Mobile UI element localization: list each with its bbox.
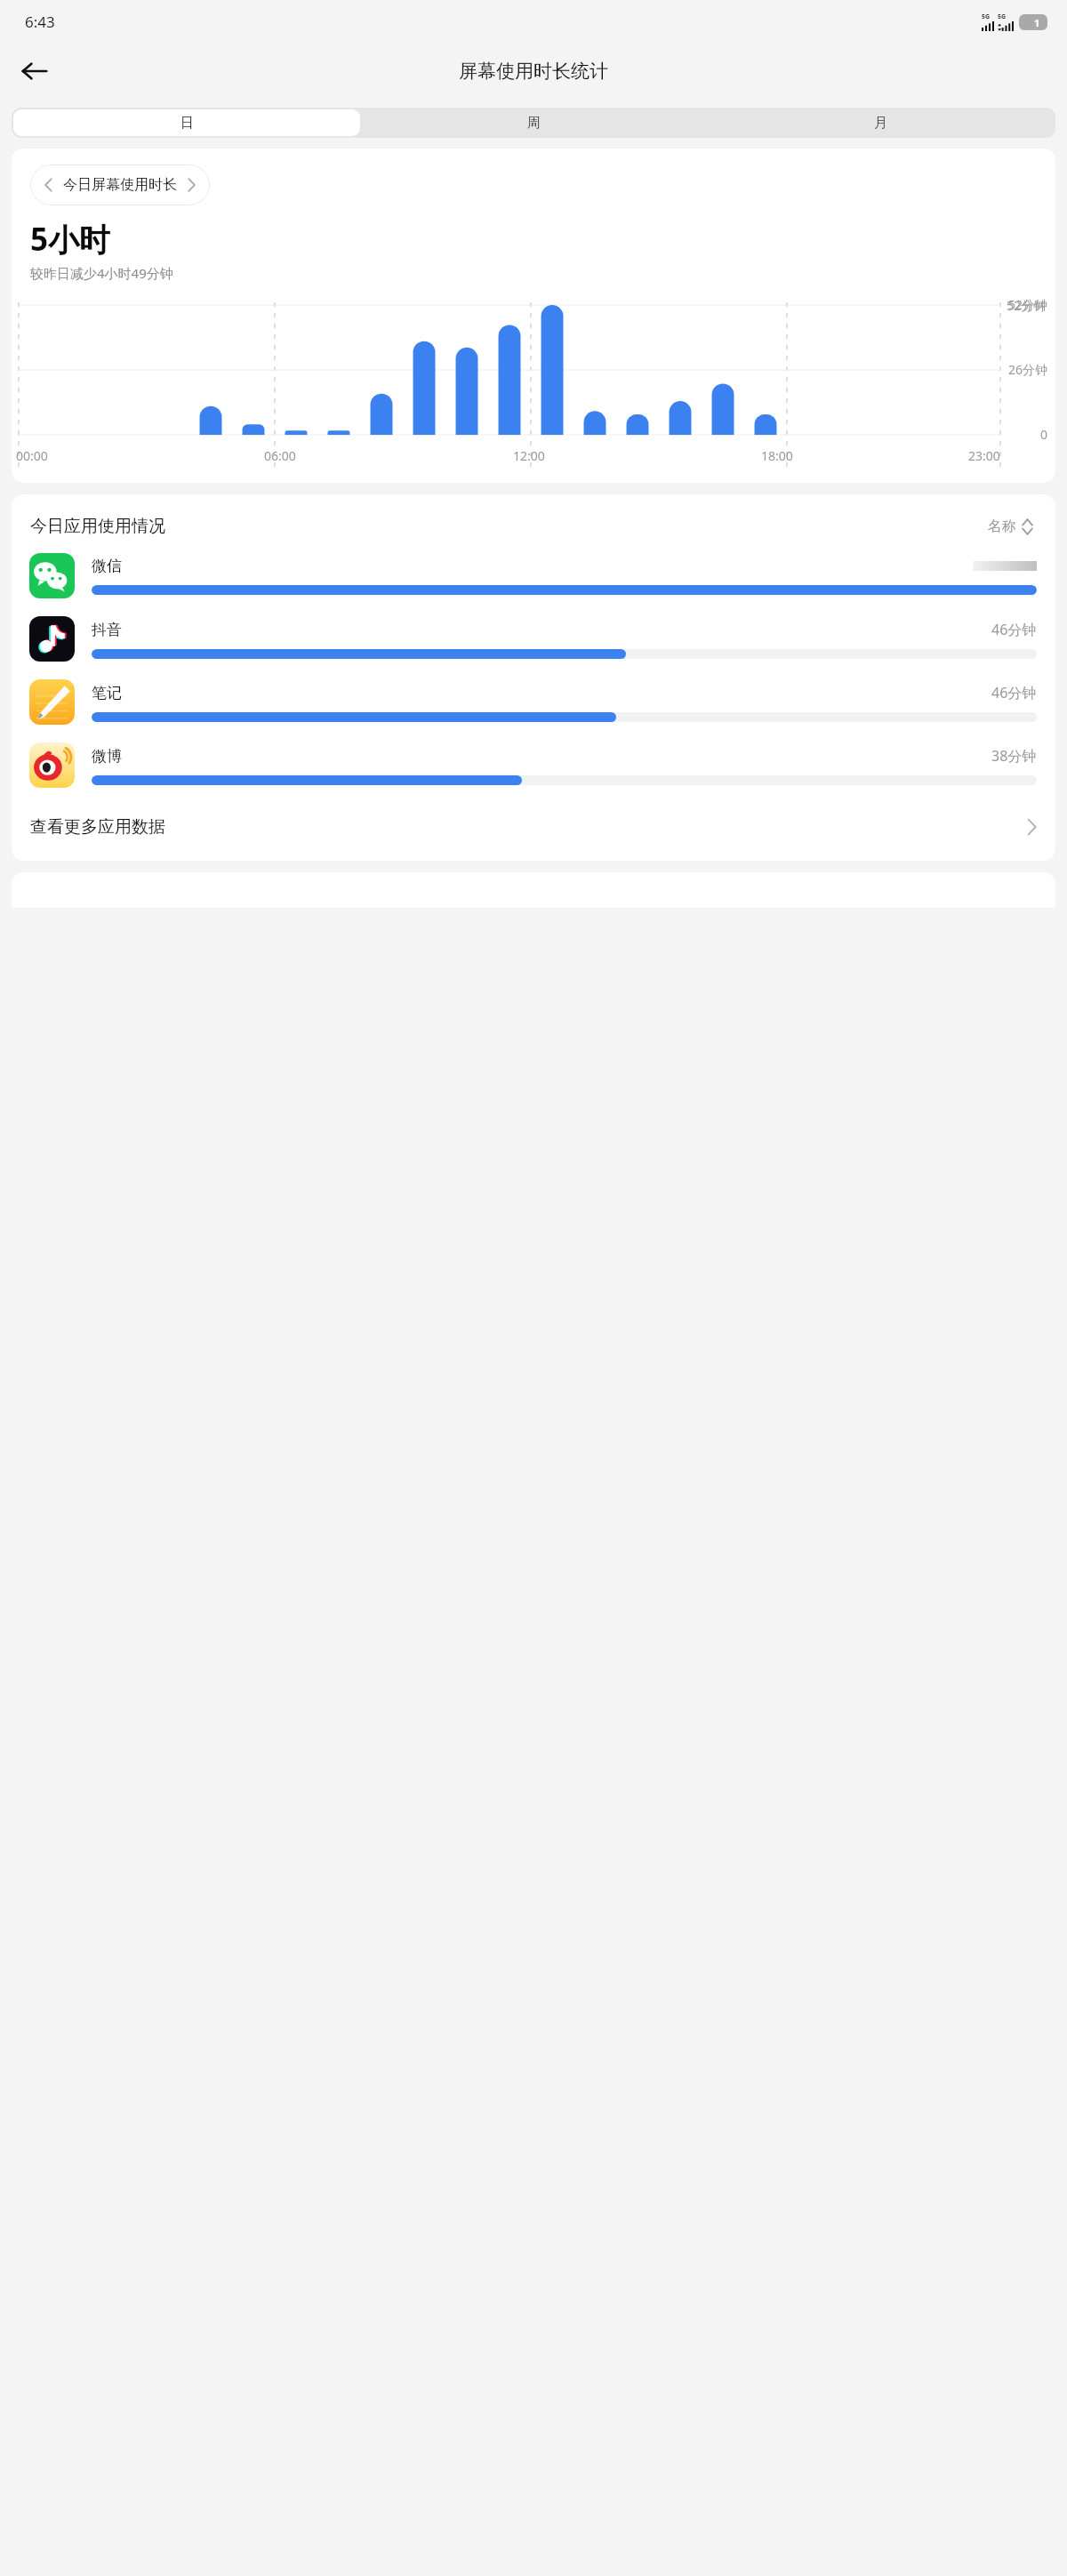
staticText: 26分钟 [1008, 361, 1048, 378]
staticText: 微信 [92, 557, 122, 575]
staticText: 日 [181, 115, 194, 132]
staticText: 周 [527, 115, 541, 132]
staticText: 月 [874, 115, 887, 132]
staticText: 屏幕使用时长统计 [459, 60, 608, 83]
staticText: 今日应用使用情况 [30, 516, 165, 537]
staticText: 笔记 [92, 684, 122, 702]
button[interactable]: 今日屏幕使用时长 [30, 165, 210, 205]
button[interactable]: Back [11, 47, 59, 95]
staticText: 名称 [988, 518, 1016, 535]
staticText: 今日屏幕使用时长 [63, 176, 177, 194]
button[interactable]: 抖音 [12, 607, 1055, 670]
staticText: 5小时 [30, 218, 111, 261]
staticText: 00:00 [16, 447, 48, 464]
button[interactable]: 周 [360, 109, 707, 136]
staticText: 6:43 [25, 12, 55, 32]
staticText: 46分钟 [991, 683, 1037, 702]
button[interactable]: 微信 [12, 544, 1055, 607]
staticText: 18:00 [761, 447, 793, 464]
button[interactable]: 微博 [12, 734, 1055, 797]
staticText: 52分钟 [1007, 297, 1047, 314]
button[interactable]: 名称 [984, 514, 1037, 539]
staticText: 微博 [92, 747, 122, 766]
staticText: 06:00 [264, 447, 296, 464]
staticText: 较昨日减少4小时49分钟 [30, 264, 173, 282]
staticText: 38分钟 [991, 746, 1037, 766]
button[interactable]: 笔记 [12, 670, 1055, 734]
staticText: 52分钟 [1008, 296, 1048, 313]
staticText: 查看更多应用数据 [30, 816, 165, 838]
button[interactable]: 月 [707, 109, 1054, 136]
staticText: 抖音 [92, 621, 122, 639]
staticText: 23:00 [968, 447, 1000, 464]
staticText: 46分钟 [991, 620, 1037, 639]
staticText: 0 [1040, 426, 1048, 443]
button[interactable]: 日 [13, 109, 360, 136]
button[interactable]: 查看更多应用数据 [12, 797, 1055, 861]
staticText: 1 [1034, 16, 1040, 29]
staticText: 5G [998, 12, 1007, 21]
staticText: 5G [982, 12, 991, 21]
staticText: 12:00 [513, 447, 545, 464]
